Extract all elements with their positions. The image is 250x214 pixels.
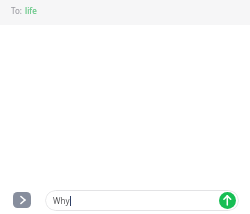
- button[interactable]: To:: [0, 0, 250, 25]
- button[interactable]: Why: [45, 190, 239, 211]
- staticText: Why: [53, 195, 70, 206]
- button[interactable]: Send: [219, 192, 236, 209]
- staticText: To:: [11, 5, 22, 16]
- staticText: life: [25, 5, 37, 16]
- button[interactable]: More options: [13, 192, 31, 208]
